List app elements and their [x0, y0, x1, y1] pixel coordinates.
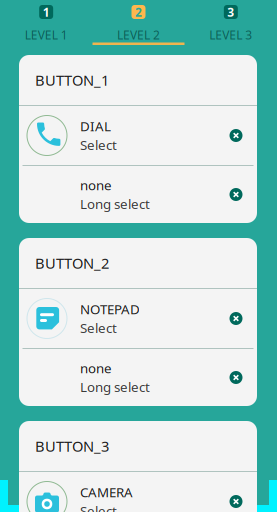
staticText: Select	[80, 319, 117, 337]
button[interactable]: Remove	[223, 488, 249, 512]
button[interactable]: CAMERA	[19, 472, 257, 512]
staticText: BUTTON_1	[35, 70, 109, 90]
button[interactable]: none	[19, 166, 257, 223]
button[interactable]: Remove	[223, 122, 249, 148]
staticText: BUTTON_3	[35, 436, 109, 456]
staticText: DIAL	[80, 117, 111, 135]
staticText: 3	[227, 4, 234, 20]
button[interactable]: none	[19, 349, 257, 406]
staticText: Select	[80, 502, 117, 512]
button[interactable]: DIAL	[19, 106, 257, 165]
button[interactable]: Remove	[223, 305, 249, 331]
staticText: LEVEL 3	[209, 27, 252, 43]
staticText: LEVEL 2	[117, 27, 160, 43]
button[interactable]: 2	[92, 0, 185, 46]
staticText: Long select	[80, 195, 150, 213]
button[interactable]: 3	[185, 0, 277, 46]
staticText: LEVEL 1	[25, 27, 68, 43]
button[interactable]: Remove	[223, 181, 249, 207]
staticText: Long select	[80, 378, 150, 396]
staticText: none	[80, 176, 112, 194]
button[interactable]: Remove	[223, 364, 249, 390]
staticText: 1	[43, 4, 50, 20]
staticText: 2	[135, 4, 142, 20]
staticText: CAMERA	[80, 483, 133, 501]
staticText: none	[80, 359, 112, 377]
button[interactable]: 1	[0, 0, 92, 46]
staticText: BUTTON_2	[35, 253, 109, 273]
button[interactable]: NOTEPAD	[19, 289, 257, 348]
staticText: Select	[80, 136, 117, 154]
staticText: NOTEPAD	[80, 300, 140, 318]
